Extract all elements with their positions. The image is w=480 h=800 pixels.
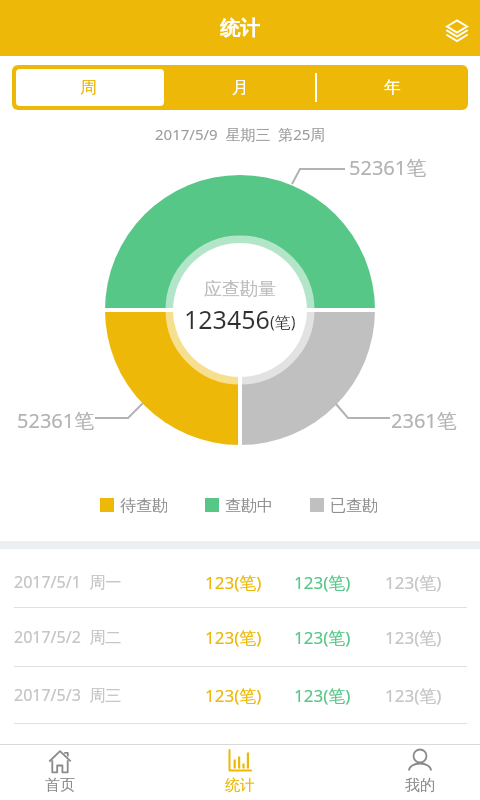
button[interactable]: 2017/5/1 周一 <box>0 557 480 607</box>
staticText: 123(笔) <box>205 684 262 707</box>
button[interactable]: 统计 <box>200 746 280 800</box>
staticText: 123(笔) <box>294 684 351 707</box>
staticText: 年 <box>384 77 401 98</box>
staticText: 2017/5/9 星期三 第25周 <box>155 124 326 144</box>
button[interactable]: 周 <box>12 65 164 110</box>
staticText: 123(笔) <box>385 626 442 649</box>
staticText: 123(笔) <box>294 626 351 649</box>
staticText: 查勘中 <box>225 496 273 516</box>
staticText: 2017/5/1 周一 <box>14 571 122 593</box>
button[interactable]: 月 <box>164 65 316 110</box>
staticText: 123(笔) <box>205 626 262 649</box>
staticText: 123(笔) <box>385 684 442 707</box>
staticText: 已查勘 <box>330 496 378 516</box>
button[interactable]: 2017/5/3 周三 <box>0 667 480 723</box>
staticText: 应查勘量 <box>204 278 276 301</box>
staticText: 统计 <box>225 776 255 795</box>
staticText: 123(笔) <box>385 571 442 594</box>
staticText: 周 <box>80 77 97 98</box>
staticText: 统计 <box>220 16 260 41</box>
button[interactable] <box>437 14 477 48</box>
button[interactable]: 年 <box>316 65 468 110</box>
staticText: 2017/5/2 周二 <box>14 626 122 648</box>
staticText: 待查勘 <box>120 496 168 516</box>
staticText: 123(笔) <box>205 571 262 594</box>
staticText: 123(笔) <box>294 571 351 594</box>
button[interactable]: 首页 <box>20 746 100 800</box>
staticText: 2017/5/3 周三 <box>14 684 122 706</box>
staticText: 52361笔 <box>349 154 427 181</box>
staticText: 首页 <box>45 776 75 795</box>
staticText: 52361笔 <box>17 407 95 434</box>
button[interactable]: 2017/5/2 周二 <box>0 608 480 666</box>
staticText: 2361笔 <box>391 407 457 434</box>
staticText: 月 <box>232 77 249 98</box>
button[interactable]: 我的 <box>380 746 460 800</box>
staticText: 123456 <box>184 302 270 336</box>
staticText: (笔) <box>270 311 296 333</box>
staticText: 我的 <box>405 776 435 795</box>
